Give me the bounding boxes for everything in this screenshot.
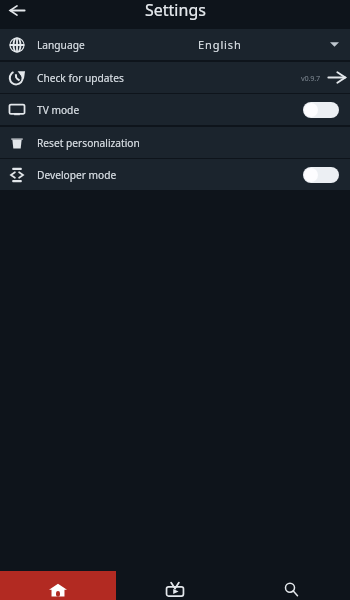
button[interactable]: Check for updates [0,62,350,93]
staticText: Developer mode [37,168,117,182]
button[interactable]: TV mode [0,94,350,125]
button[interactable]: Home [0,571,116,600]
button[interactable]: Choose language [330,42,339,47]
button[interactable]: Reset personalization [0,127,350,158]
staticText: Settings [145,0,206,20]
staticText: Language [37,38,85,52]
button[interactable]: Language [0,29,350,60]
button[interactable]: TV [116,571,233,600]
button[interactable]: Toggle TV mode [303,102,339,118]
staticText: Check for updates [37,71,124,85]
staticText: v0.9.7 [301,73,320,83]
staticText: English [198,37,242,52]
button[interactable]: Search [233,571,350,600]
button[interactable]: Back [6,0,28,21]
staticText: Reset personalization [37,136,140,150]
button[interactable]: Toggle developer mode [303,167,339,183]
staticText: TV mode [37,103,80,117]
button[interactable]: Developer mode [0,159,350,190]
